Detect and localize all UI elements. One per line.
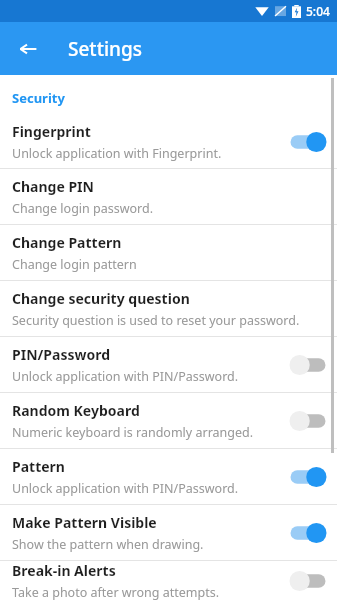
button[interactable]: Change Pattern	[0, 225, 337, 280]
staticText: PIN/Password	[12, 345, 111, 364]
button[interactable]: Break-in Alerts	[0, 561, 337, 600]
staticText: Settings	[68, 36, 142, 62]
button[interactable]: Change PIN	[0, 169, 337, 224]
staticText: Change security question	[12, 289, 190, 308]
staticText: Take a photo after wrong attempts.	[12, 584, 220, 600]
button[interactable]: Random Keyboard	[0, 393, 337, 448]
staticText: Pattern	[12, 457, 65, 476]
staticText: Change login pattern	[12, 256, 137, 273]
staticText: Unlock application with PIN/Password.	[12, 368, 239, 385]
button[interactable]: Pattern	[0, 449, 337, 504]
staticText: Security question is used to reset your …	[12, 312, 300, 329]
staticText: Make Pattern Visible	[12, 513, 157, 532]
staticText: Security	[12, 89, 65, 107]
staticText: Change Pattern	[12, 233, 122, 252]
button[interactable]: Fingerprint	[0, 116, 337, 168]
button[interactable]: Make Pattern Visible	[0, 505, 337, 560]
staticText: Break-in Alerts	[12, 561, 116, 580]
staticText: Show the pattern when drawing.	[12, 536, 204, 553]
staticText: Random Keyboard	[12, 401, 140, 420]
staticText: Unlock application with Fingerprint.	[12, 145, 222, 162]
staticText: Numeric keyboard is randomly arranged.	[12, 424, 254, 441]
staticText: 5:04	[306, 3, 330, 19]
staticText: Change PIN	[12, 177, 94, 196]
staticText: Fingerprint	[12, 122, 91, 141]
button[interactable]: Back	[8, 29, 48, 69]
button[interactable]: Change security question	[0, 281, 337, 336]
button[interactable]: PIN/Password	[0, 337, 337, 392]
staticText: Change login password.	[12, 200, 154, 217]
staticText: Unlock application with PIN/Password.	[12, 480, 239, 497]
